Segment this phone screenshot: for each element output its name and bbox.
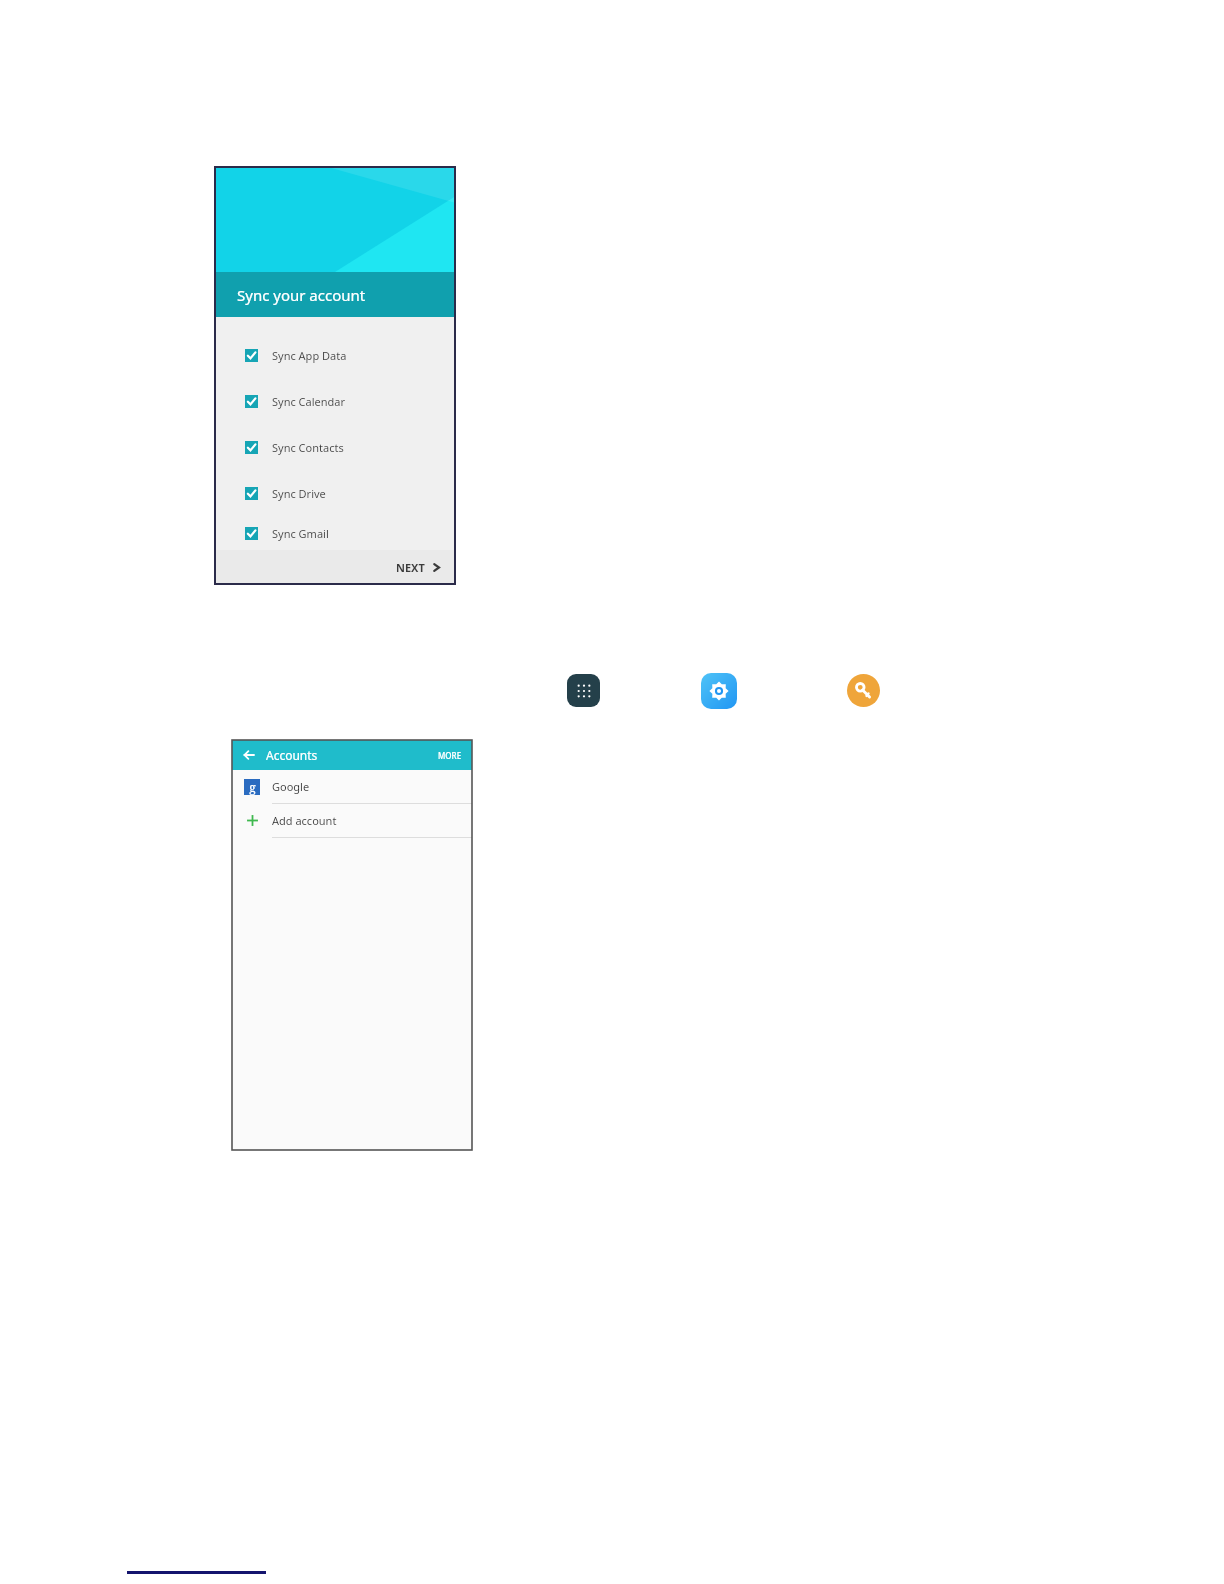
button[interactable]: NEXT <box>382 554 455 581</box>
staticText: Sync your account <box>237 285 366 305</box>
staticText: Accounts <box>266 747 318 763</box>
staticText: g <box>249 779 256 795</box>
staticText: Sync Drive <box>272 486 326 501</box>
staticText: Google <box>272 779 310 794</box>
staticText: MORE <box>438 750 462 761</box>
button[interactable]: g <box>232 770 472 804</box>
button[interactable]: Apps <box>567 674 600 707</box>
staticText: Sync Calendar <box>272 394 346 409</box>
button[interactable]: Sync Drive <box>215 470 455 516</box>
button[interactable]: Settings <box>701 673 737 709</box>
staticText: Sync Gmail <box>272 526 329 541</box>
button[interactable]: Add account <box>232 804 472 838</box>
button[interactable]: Sync Contacts <box>215 424 455 470</box>
staticText: Add account <box>272 813 337 828</box>
button[interactable]: Sync Calendar <box>215 378 455 424</box>
button[interactable]: Accounts <box>847 674 880 707</box>
staticText: NEXT <box>396 560 425 575</box>
button[interactable]: MORE <box>428 744 472 767</box>
staticText: Sync Contacts <box>272 440 344 455</box>
staticText: Sync App Data <box>272 348 347 363</box>
button[interactable]: Sync Gmail <box>215 516 455 550</box>
button[interactable]: Back <box>241 747 257 763</box>
button[interactable]: Sync App Data <box>215 332 455 378</box>
